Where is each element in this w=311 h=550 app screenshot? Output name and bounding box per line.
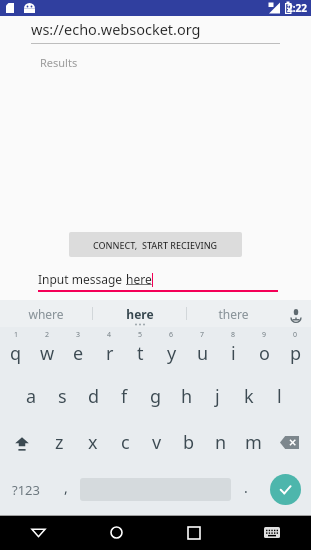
staticText: i <box>231 341 236 366</box>
button[interactable]: s <box>47 373 78 419</box>
button[interactable]: where <box>0 300 92 327</box>
staticText: where <box>28 306 64 322</box>
staticText: p <box>290 341 302 366</box>
staticText: d <box>88 384 100 409</box>
button[interactable]: m <box>237 419 269 466</box>
button[interactable]: 1 <box>0 327 32 373</box>
button[interactable]: 9 <box>249 327 280 373</box>
button[interactable]: Back <box>0 515 77 550</box>
button[interactable]: x <box>76 419 109 466</box>
button[interactable]: h <box>171 373 202 419</box>
staticText: o <box>259 341 270 366</box>
button[interactable]: 6 <box>156 327 187 373</box>
button[interactable]: f <box>109 373 140 419</box>
staticText: there <box>218 306 249 322</box>
button[interactable]: g <box>140 373 171 419</box>
staticText: , <box>64 478 68 497</box>
button[interactable]: CONNECT, START RECIEVING <box>69 232 242 257</box>
button[interactable]: z <box>43 419 76 466</box>
staticText: f <box>121 384 128 409</box>
button[interactable]: Recents <box>155 515 233 550</box>
staticText: n <box>215 430 227 455</box>
staticText: 2 <box>45 330 50 340</box>
staticText: 6 <box>169 330 174 340</box>
staticText: a <box>26 384 37 409</box>
staticText: CONNECT, START RECIEVING <box>93 239 218 251</box>
staticText: v <box>152 430 162 455</box>
staticText: w <box>40 341 55 366</box>
staticText: t <box>137 341 144 366</box>
staticText: e <box>73 341 84 366</box>
staticText: Input message <box>38 271 126 287</box>
button[interactable]: l <box>264 373 295 419</box>
staticText: c <box>121 430 130 455</box>
button[interactable]: b <box>173 419 205 466</box>
staticText: 3 <box>76 330 81 340</box>
staticText: s <box>58 384 67 409</box>
staticText: 7 <box>200 330 205 340</box>
button[interactable]: j <box>202 373 233 419</box>
staticText: z <box>55 430 64 455</box>
staticText: b <box>183 430 195 455</box>
button[interactable]: there <box>187 300 280 327</box>
staticText: q <box>10 341 22 366</box>
button[interactable]: Home <box>77 515 155 550</box>
button[interactable]: 5 <box>125 327 156 373</box>
button[interactable]: k <box>233 373 264 419</box>
button[interactable]: Enter <box>270 474 301 505</box>
button[interactable]: Voice input <box>280 300 311 327</box>
staticText: x <box>88 430 98 455</box>
button[interactable]: Switch keyboard <box>233 515 311 550</box>
staticText: g <box>150 384 162 409</box>
staticText: Results <box>40 55 78 70</box>
button[interactable]: , <box>51 466 80 513</box>
staticText: l <box>277 384 282 409</box>
staticText: here <box>126 271 152 287</box>
staticText: y <box>167 341 177 366</box>
button[interactable]: 7 <box>187 327 218 373</box>
staticText: here <box>126 306 154 322</box>
button[interactable]: . <box>231 466 260 513</box>
button[interactable]: v <box>141 419 173 466</box>
staticText: 1 <box>14 330 19 340</box>
staticText: ws://echo.websocket.org <box>31 19 201 39</box>
staticText: m <box>245 430 262 455</box>
staticText: 8 <box>231 330 236 340</box>
button[interactable]: Shift <box>0 419 43 466</box>
button[interactable]: ?123 <box>0 466 51 513</box>
staticText: u <box>197 341 209 366</box>
staticText: . <box>244 478 248 497</box>
button[interactable]: a <box>16 373 47 419</box>
button[interactable]: 0 <box>280 327 311 373</box>
staticText: k <box>244 384 254 409</box>
button[interactable]: 4 <box>94 327 125 373</box>
staticText: 2:22 <box>287 1 307 15</box>
staticText: 5 <box>138 330 143 340</box>
button[interactable]: 8 <box>218 327 249 373</box>
button[interactable]: d <box>78 373 109 419</box>
button[interactable]: Input message <box>38 271 278 292</box>
staticText: r <box>106 341 114 366</box>
button[interactable]: here <box>93 300 186 327</box>
button[interactable]: 2 <box>32 327 63 373</box>
staticText: ?123 <box>12 481 40 499</box>
button[interactable]: Backspace <box>269 419 311 466</box>
staticText: h <box>181 384 193 409</box>
button[interactable]: c <box>109 419 141 466</box>
button[interactable]: n <box>205 419 237 466</box>
staticText: 4 <box>107 330 112 340</box>
button[interactable]: 3 <box>63 327 94 373</box>
staticText: 0 <box>293 330 298 340</box>
staticText: 9 <box>262 330 267 340</box>
staticText: j <box>215 384 220 409</box>
